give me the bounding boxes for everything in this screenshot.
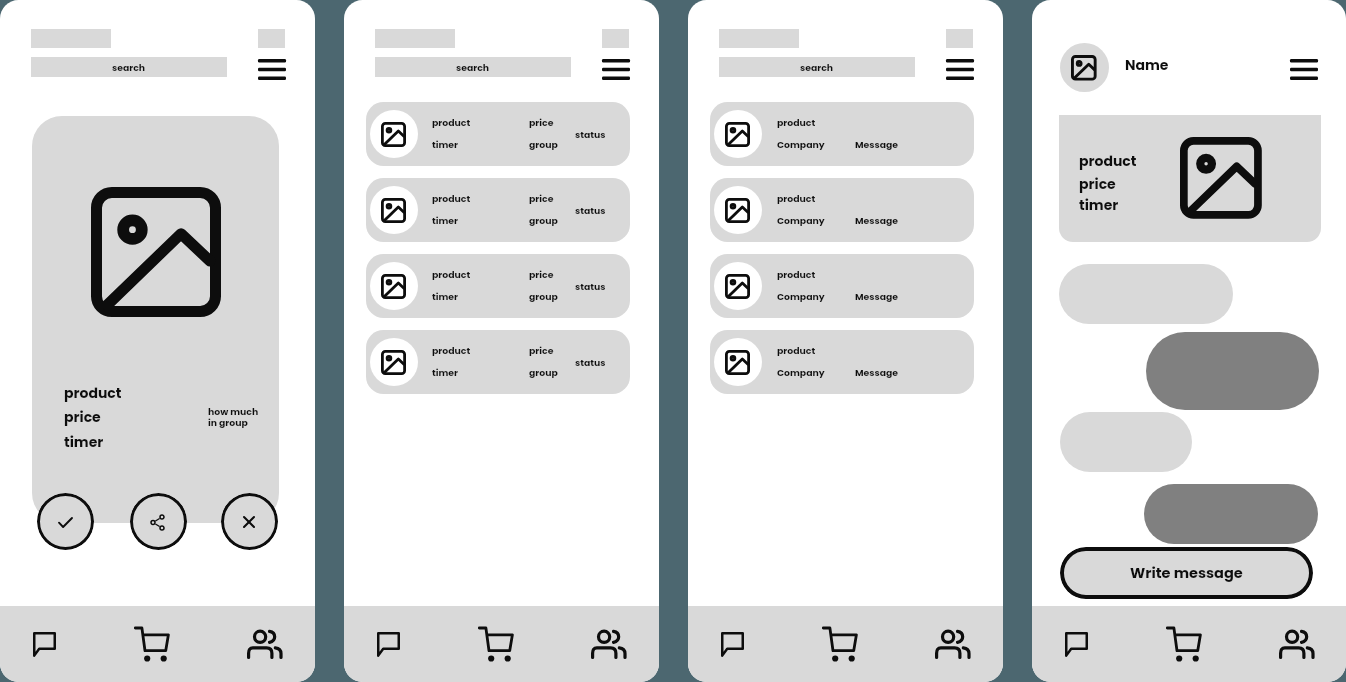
staticText: product	[777, 192, 816, 205]
staticText: product	[432, 268, 471, 281]
staticText: status	[575, 280, 606, 293]
button[interactable]: product	[366, 330, 630, 394]
staticText: timer	[64, 432, 104, 452]
button[interactable]: product	[366, 102, 630, 166]
staticText: Name	[1125, 55, 1169, 75]
staticText: price	[529, 192, 554, 205]
button[interactable]: People	[1269, 621, 1324, 669]
button[interactable]: Menu	[253, 55, 290, 84]
button[interactable]: Menu	[597, 55, 634, 84]
staticText: group	[529, 366, 558, 379]
staticText: Message	[855, 366, 898, 379]
button[interactable]: Cart	[1155, 620, 1211, 670]
button[interactable]: product	[1059, 115, 1321, 242]
button[interactable]: Messages	[21, 622, 67, 668]
staticText: product	[432, 192, 471, 205]
staticText: Write message	[1130, 563, 1243, 583]
button[interactable]: search	[31, 57, 227, 77]
button[interactable]: Messages	[709, 622, 755, 668]
button[interactable]: Cart	[123, 620, 179, 670]
button[interactable]: search	[375, 57, 571, 77]
staticText: Company	[777, 366, 825, 379]
staticText: product	[777, 344, 816, 357]
button[interactable]: People	[237, 621, 292, 669]
staticText: timer	[432, 214, 459, 227]
button[interactable]: search	[719, 57, 915, 77]
staticText: Company	[777, 290, 825, 303]
staticText: product	[64, 383, 122, 403]
staticText: status	[575, 128, 606, 141]
staticText: timer	[432, 138, 459, 151]
staticText: group	[529, 214, 558, 227]
staticText: timer	[432, 366, 459, 379]
staticText: timer	[432, 290, 459, 303]
button[interactable]: Cart	[467, 620, 523, 670]
button[interactable]: Cart	[811, 620, 867, 670]
button[interactable]: Accept	[37, 493, 94, 550]
staticText: Company	[777, 214, 825, 227]
staticText: product	[777, 116, 816, 129]
staticText: search	[456, 61, 490, 74]
staticText: Company	[777, 138, 825, 151]
button[interactable]: Profile	[1060, 43, 1109, 92]
button[interactable]: product	[710, 178, 974, 242]
staticText: Message	[855, 138, 898, 151]
staticText: product	[432, 116, 471, 129]
staticText: group	[529, 290, 558, 303]
staticText: Message	[855, 214, 898, 227]
button[interactable]: product	[366, 178, 630, 242]
staticText: price	[529, 344, 554, 357]
button[interactable]: Menu	[1285, 55, 1322, 84]
staticText: price	[529, 116, 554, 129]
staticText: in group	[208, 416, 248, 429]
staticText: price	[64, 407, 101, 427]
button[interactable]: product	[710, 254, 974, 318]
button[interactable]: Share	[130, 493, 187, 550]
button[interactable]: People	[925, 621, 980, 669]
button[interactable]: product	[32, 116, 279, 523]
button[interactable]: Messages	[365, 622, 411, 668]
staticText: product	[432, 344, 471, 357]
staticText: timer	[1079, 195, 1119, 215]
staticText: status	[575, 204, 606, 217]
button[interactable]: Menu	[941, 55, 978, 84]
button[interactable]: product	[710, 330, 974, 394]
button[interactable]: Messages	[1053, 622, 1099, 668]
button[interactable]: product	[710, 102, 974, 166]
staticText: price	[529, 268, 554, 281]
staticText: product	[777, 268, 816, 281]
staticText: price	[1079, 174, 1116, 194]
staticText: how much	[208, 405, 259, 418]
staticText: product	[1079, 151, 1137, 171]
staticText: status	[575, 356, 606, 369]
staticText: group	[529, 138, 558, 151]
staticText: Message	[855, 290, 898, 303]
staticText: search	[800, 61, 834, 74]
button[interactable]: Write message	[1060, 547, 1313, 599]
staticText: search	[112, 61, 146, 74]
button[interactable]: product	[366, 254, 630, 318]
button[interactable]: Dismiss	[221, 493, 278, 550]
button[interactable]: People	[581, 621, 636, 669]
